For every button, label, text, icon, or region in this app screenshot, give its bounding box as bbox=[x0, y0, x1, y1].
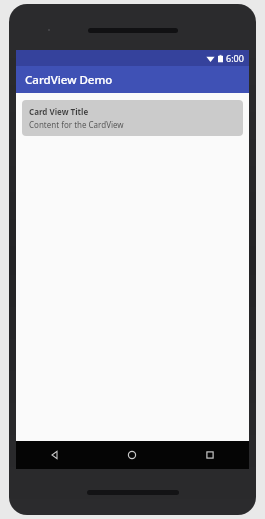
button[interactable]: Card View Title bbox=[22, 100, 243, 136]
staticText: Content for the CardView bbox=[29, 119, 124, 130]
staticText: CardView Demo bbox=[25, 72, 113, 88]
staticText: 6:00 bbox=[226, 52, 244, 64]
button[interactable]: Recent apps bbox=[171, 441, 249, 469]
button[interactable]: Back bbox=[16, 441, 93, 469]
button[interactable]: Home bbox=[93, 441, 171, 469]
staticText: Card View Title bbox=[29, 106, 89, 117]
